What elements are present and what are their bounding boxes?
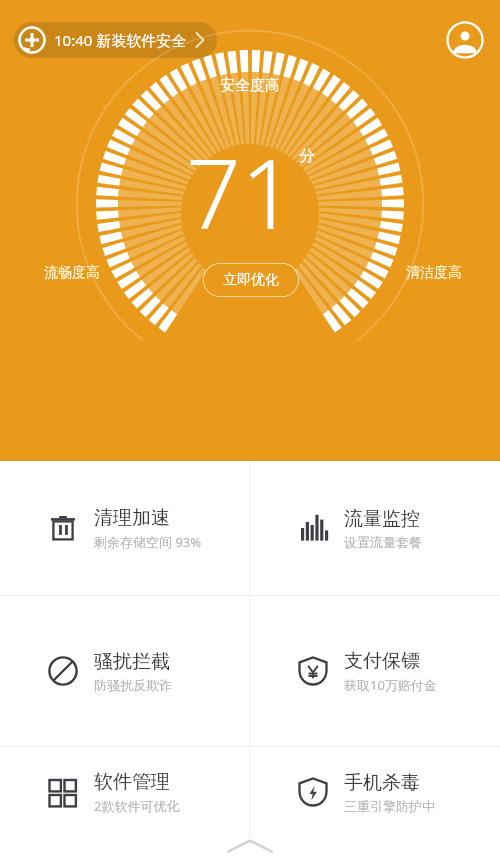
button[interactable]: 软件管理 [0,747,249,837]
button[interactable]: Expand [220,835,280,857]
button[interactable]: Profile [446,21,484,59]
staticText: 骚扰拦截 [94,650,170,674]
staticText: 立即优化 [223,271,279,289]
staticText: 71 [186,126,296,257]
button[interactable]: 流量监控 [250,461,500,595]
staticText: 流畅度高 [44,264,100,282]
button[interactable]: 立即优化 [203,263,299,297]
staticText: 设置流量套餐 [344,534,422,550]
staticText: 清理加速 [94,506,170,530]
staticText: 防骚扰反欺诈 [94,677,172,693]
staticText: 剩余存储空间 93% [94,533,202,551]
staticText: 2款软件可优化 [94,797,180,815]
button[interactable]: 支付保镖 [250,596,500,746]
staticText: 安全度高 [220,76,280,95]
staticText: 手机杀毒 [344,771,420,795]
staticText: 流量监控 [344,507,420,531]
staticText: 支付保镖 [344,649,420,673]
button[interactable]: 10:40 新装软件安全 [14,22,217,58]
staticText: 获取10万赔付金 [344,676,437,694]
button[interactable]: 骚扰拦截 [0,596,249,746]
staticText: 分 [299,146,315,166]
button[interactable]: 清理加速 [0,461,249,595]
staticText: 三重引擎防护中 [344,798,435,814]
staticText: 10:40 新装软件安全 [54,30,187,50]
button[interactable]: 手机杀毒 [250,747,500,837]
staticText: 清洁度高 [406,264,462,282]
staticText: 软件管理 [94,770,170,794]
